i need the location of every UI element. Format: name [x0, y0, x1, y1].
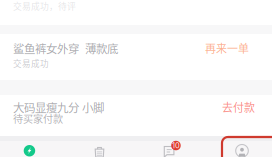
button[interactable]: 购物车	[77, 141, 121, 157]
staticText: 大码显瘦九分 小脚	[13, 99, 104, 116]
staticText: 再来一单	[205, 40, 249, 56]
button[interactable]: 大码显瘦九分 小脚	[0, 95, 272, 136]
staticText: 交易成功，待评	[13, 0, 76, 12]
button[interactable]: 我的	[220, 141, 264, 157]
staticText: 去付款	[222, 99, 255, 115]
staticText: 交易成功	[13, 57, 49, 69]
staticText: 鲨鱼裤女外穿 薄款底	[13, 40, 118, 57]
button[interactable]: 鲨鱼裤女外穿 薄款底	[0, 34, 272, 80]
button[interactable]: 消息	[147, 141, 191, 157]
staticText: 10	[172, 141, 180, 150]
staticText: 待买家付款	[13, 111, 63, 126]
button[interactable]: 首页	[7, 141, 51, 157]
